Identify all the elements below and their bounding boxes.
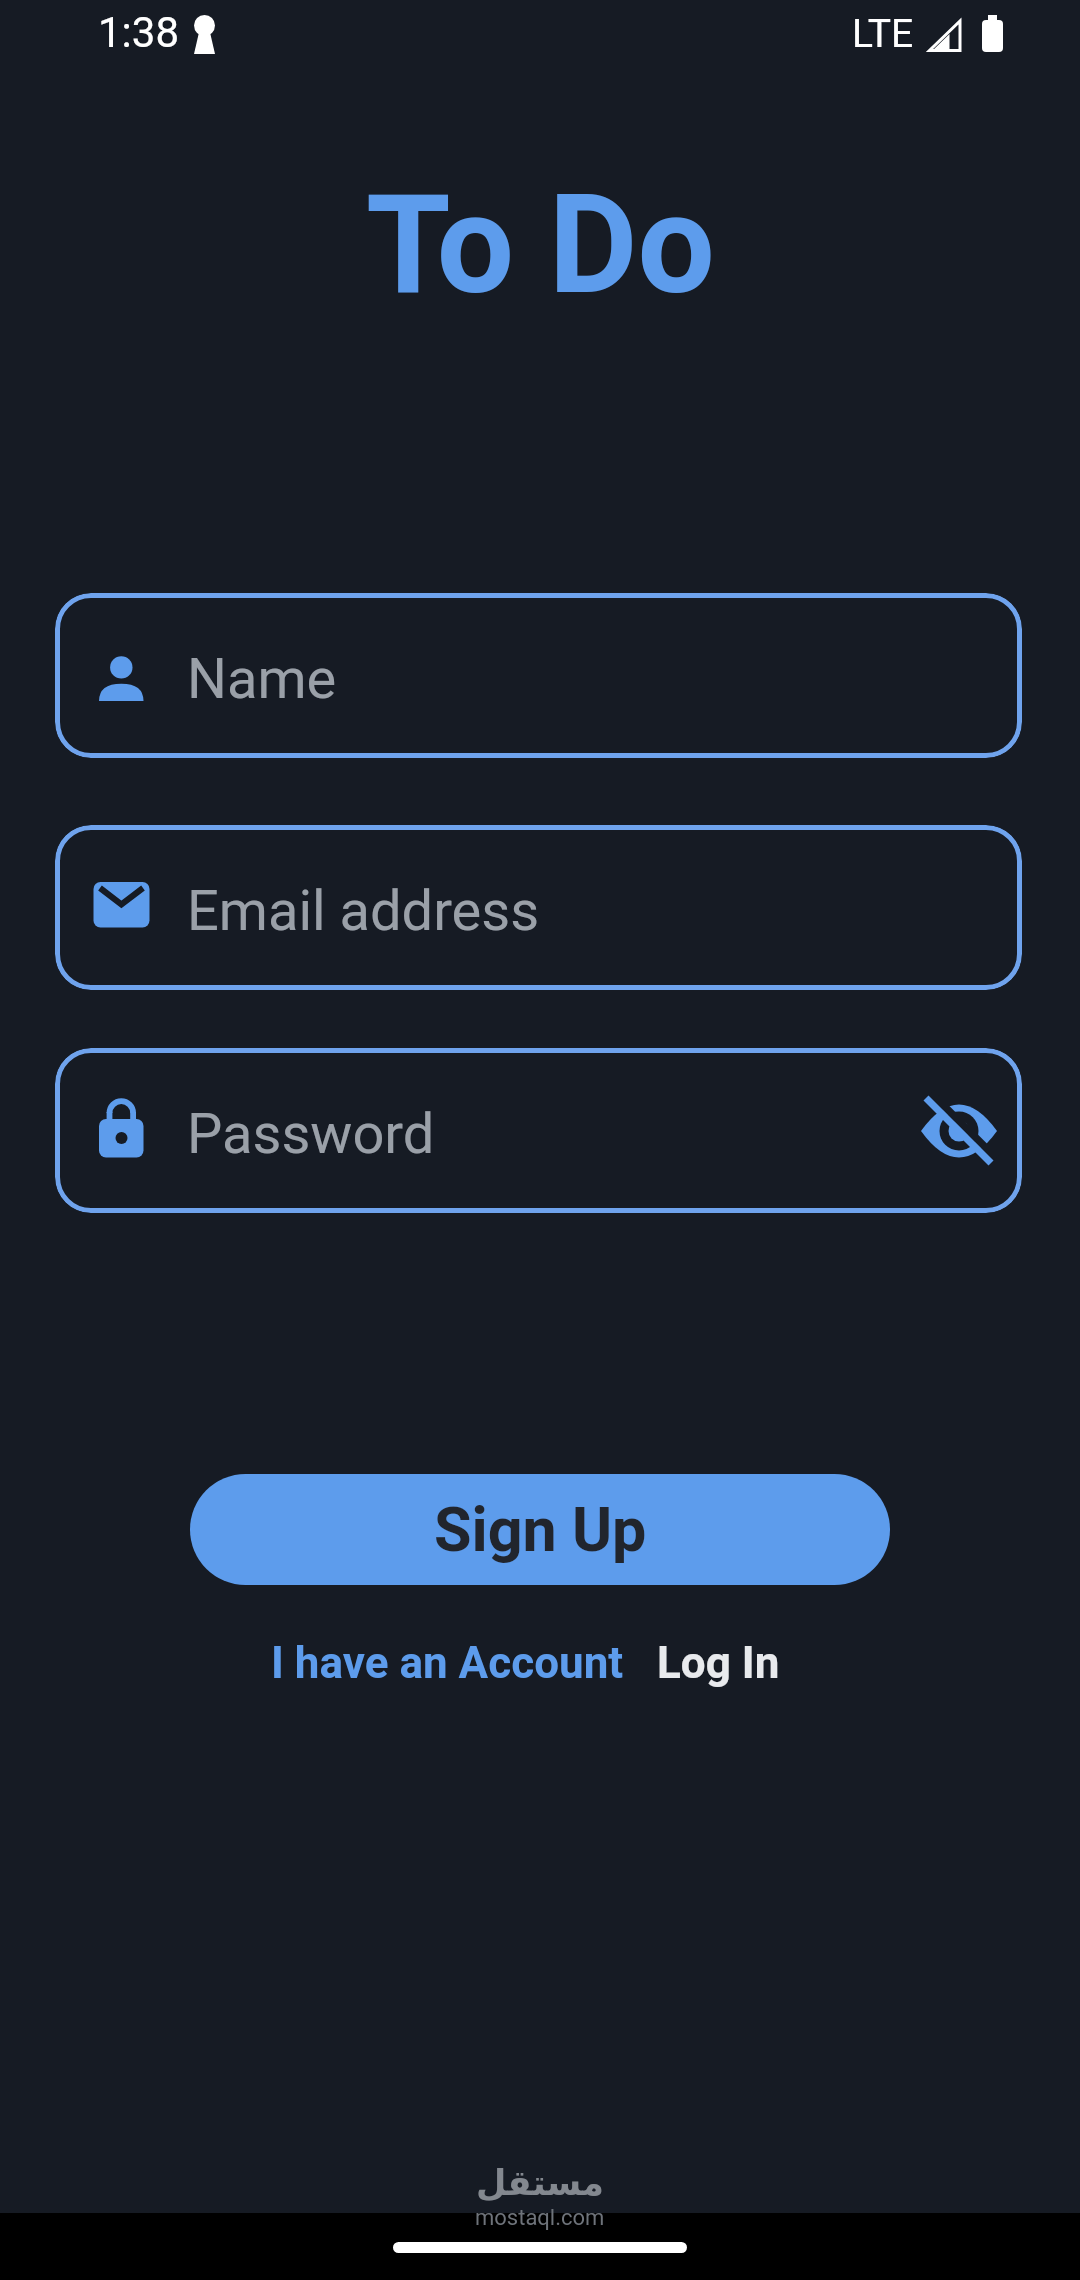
staticText: Password bbox=[187, 1101, 435, 1167]
button[interactable]: Log In bbox=[657, 1637, 780, 1689]
staticText: Name bbox=[187, 646, 337, 712]
staticText: I have an Account bbox=[271, 1637, 624, 1689]
staticText: LTE bbox=[852, 11, 914, 57]
button[interactable]: Password bbox=[55, 1048, 1022, 1213]
button[interactable]: Email address bbox=[55, 825, 1022, 990]
staticText: To Do bbox=[366, 165, 715, 326]
staticText: 1:38 bbox=[98, 8, 179, 57]
staticText: Sign Up bbox=[434, 1494, 647, 1565]
button[interactable]: Name bbox=[55, 593, 1022, 758]
staticText: Log In bbox=[657, 1637, 780, 1689]
staticText: Email address bbox=[187, 878, 540, 944]
staticText: mostaql.com bbox=[475, 2205, 605, 2231]
button[interactable]: Sign Up bbox=[190, 1474, 890, 1585]
staticText: مستقل bbox=[476, 2163, 605, 2204]
button[interactable]: I have an Account bbox=[271, 1637, 624, 1689]
